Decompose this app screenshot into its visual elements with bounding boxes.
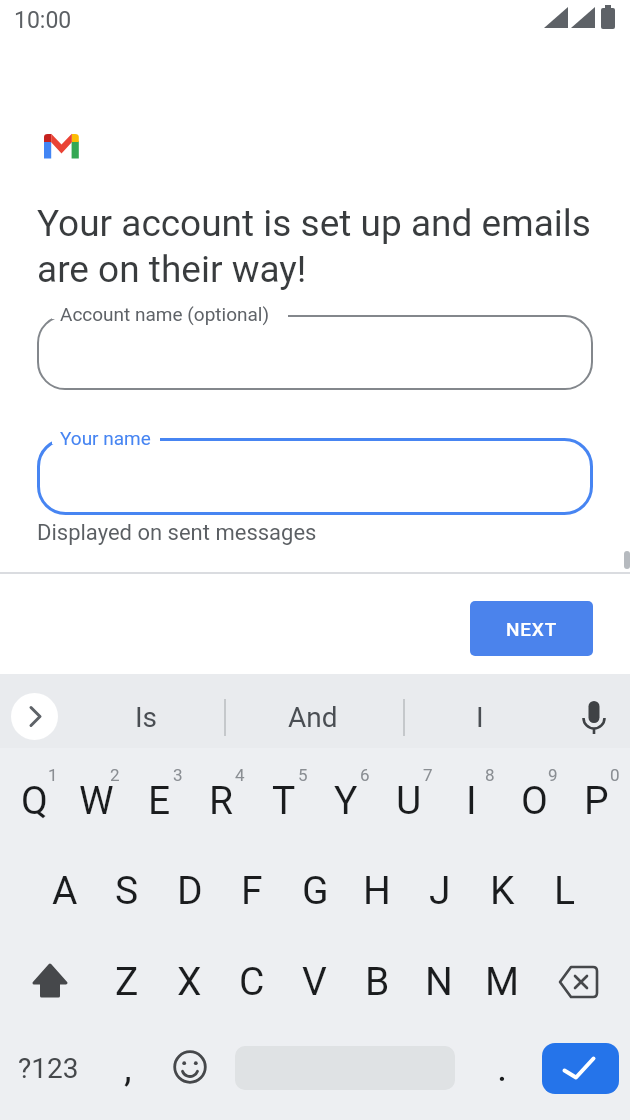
button[interactable]: B	[337, 952, 417, 1012]
staticText: V	[302, 959, 327, 1005]
staticText: Account name (optional)	[60, 303, 270, 325]
staticText: Q	[21, 778, 48, 824]
button[interactable]: Z	[87, 952, 167, 1012]
staticText: W	[79, 778, 114, 824]
button[interactable]: Y	[306, 771, 386, 831]
button[interactable]	[37, 438, 593, 515]
button[interactable]: F	[212, 861, 292, 921]
button[interactable]	[542, 1043, 619, 1094]
staticText: 10:00	[14, 7, 72, 34]
staticText: Z	[115, 959, 139, 1005]
staticText: 2	[110, 765, 120, 784]
staticText: Your account is set up and emails are on…	[37, 202, 617, 291]
button[interactable]: O	[494, 771, 574, 831]
staticText: 4	[235, 765, 245, 784]
button[interactable]: U	[369, 771, 449, 831]
staticText: 6	[360, 765, 370, 784]
staticText: T	[272, 778, 296, 824]
staticText: G	[302, 868, 329, 914]
button[interactable]: H	[337, 861, 417, 921]
button[interactable]: ?123	[8, 1038, 88, 1098]
staticText: B	[365, 959, 390, 1005]
button[interactable]: L	[525, 861, 605, 921]
button[interactable]: T	[244, 771, 324, 831]
staticText: S	[115, 868, 139, 914]
button[interactable]: I	[431, 771, 511, 831]
button[interactable]: E	[119, 771, 199, 831]
staticText: J	[429, 868, 451, 914]
button[interactable]: C	[212, 952, 292, 1012]
staticText: H	[363, 868, 391, 914]
button[interactable]	[37, 315, 593, 390]
button[interactable]: S	[87, 861, 167, 921]
staticText: F	[241, 868, 263, 914]
staticText: M	[485, 959, 520, 1005]
staticText: 5	[298, 765, 308, 784]
button[interactable]: Q	[0, 771, 74, 831]
staticText: 0	[610, 765, 620, 784]
staticText: O	[521, 778, 548, 824]
staticText: 7	[423, 765, 433, 784]
button[interactable]	[11, 693, 58, 740]
staticText: L	[554, 868, 576, 914]
staticText: E	[148, 778, 171, 824]
staticText: Is	[135, 701, 158, 734]
staticText: 1	[48, 765, 58, 784]
button[interactable]: J	[400, 861, 480, 921]
staticText: ?123	[18, 1052, 79, 1085]
staticText: 3	[173, 765, 183, 784]
staticText: NEXT	[506, 618, 558, 640]
staticText: Displayed on sent messages	[37, 520, 317, 546]
staticText: ,	[124, 1045, 132, 1091]
staticText: C	[239, 959, 265, 1005]
staticText: P	[584, 778, 609, 824]
staticText: U	[396, 778, 422, 824]
staticText: .	[497, 1045, 508, 1091]
staticText: A	[52, 868, 78, 914]
staticText: I	[476, 701, 484, 734]
button[interactable]: P	[556, 771, 630, 831]
button[interactable]: M	[462, 952, 542, 1012]
staticText: 9	[548, 765, 558, 784]
button[interactable]: Is	[106, 687, 186, 747]
button[interactable]: ,	[88, 1038, 168, 1098]
staticText: D	[177, 868, 203, 914]
staticText: Your name	[60, 427, 151, 449]
button[interactable]: NEXT	[470, 601, 593, 656]
staticText: Y	[334, 778, 358, 824]
button[interactable]	[572, 692, 616, 742]
staticText: X	[177, 959, 202, 1005]
staticText: 8	[485, 765, 495, 784]
staticText: K	[490, 868, 515, 914]
button[interactable]: I	[440, 687, 520, 747]
button[interactable]: R	[181, 771, 261, 831]
staticText: N	[425, 959, 453, 1005]
button[interactable]: G	[275, 861, 355, 921]
button[interactable]: D	[150, 861, 230, 921]
button[interactable]	[20, 956, 76, 1008]
staticText: And	[288, 701, 338, 734]
button[interactable]	[550, 958, 606, 1006]
button[interactable]: N	[399, 952, 479, 1012]
button[interactable]: K	[462, 861, 542, 921]
button[interactable]: A	[25, 861, 105, 921]
button[interactable]: X	[149, 952, 229, 1012]
staticText: R	[209, 778, 234, 824]
button[interactable]: .	[462, 1038, 542, 1098]
button[interactable]	[172, 1049, 208, 1085]
button[interactable]: W	[56, 771, 136, 831]
button[interactable]: V	[274, 952, 354, 1012]
staticText: I	[466, 778, 477, 824]
button[interactable]: And	[273, 687, 353, 747]
